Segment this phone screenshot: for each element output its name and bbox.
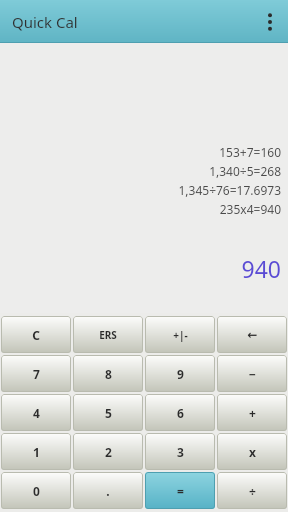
staticText: ERS: [99, 328, 117, 342]
staticText: 4: [33, 405, 40, 421]
staticText: 5: [105, 405, 112, 421]
staticText: 1: [33, 444, 40, 460]
button[interactable]: −: [217, 355, 287, 392]
staticText: Quick Cal: [12, 12, 78, 32]
button[interactable]: 0: [1, 472, 71, 509]
staticText: 2: [105, 444, 112, 460]
staticText: 8: [105, 366, 112, 382]
button[interactable]: 4: [1, 394, 71, 431]
button[interactable]: 6: [145, 394, 215, 431]
button[interactable]: More options: [252, 4, 288, 40]
staticText: ÷: [249, 483, 256, 499]
staticText: =: [177, 483, 184, 499]
button[interactable]: 5: [73, 394, 143, 431]
button[interactable]: 9: [145, 355, 215, 392]
staticText: 9: [177, 366, 184, 382]
button[interactable]: +|-: [145, 316, 215, 353]
staticText: 153+7=160: [219, 144, 281, 160]
staticText: 940: [241, 253, 281, 284]
staticText: 1,345÷76=17.6973: [178, 182, 281, 198]
staticText: 7: [33, 366, 40, 382]
staticText: 1,340÷5=268: [209, 163, 281, 179]
button[interactable]: 3: [145, 433, 215, 470]
staticText: 0: [33, 483, 40, 499]
staticText: 3: [177, 444, 184, 460]
button[interactable]: ÷: [217, 472, 287, 509]
button[interactable]: .: [73, 472, 143, 509]
button[interactable]: 8: [73, 355, 143, 392]
staticText: C: [32, 327, 40, 343]
button[interactable]: 7: [1, 355, 71, 392]
staticText: 235x4=940: [219, 201, 281, 217]
staticText: .: [106, 483, 110, 499]
button[interactable]: ERS: [73, 316, 143, 353]
staticText: +: [249, 405, 256, 421]
staticText: −: [249, 366, 256, 382]
staticText: ←: [247, 328, 258, 342]
button[interactable]: ←: [217, 316, 287, 353]
staticText: 6: [177, 405, 184, 421]
button[interactable]: 2: [73, 433, 143, 470]
button[interactable]: C: [1, 316, 71, 353]
staticText: +|-: [173, 328, 188, 342]
staticText: x: [249, 444, 256, 460]
button[interactable]: x: [217, 433, 287, 470]
button[interactable]: +: [217, 394, 287, 431]
button[interactable]: =: [145, 472, 215, 509]
button[interactable]: 1: [1, 433, 71, 470]
